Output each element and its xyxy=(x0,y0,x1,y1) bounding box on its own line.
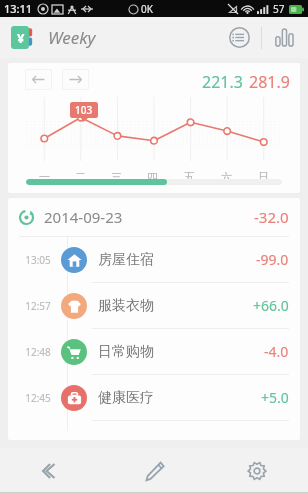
staticText: 221.3 xyxy=(202,71,243,93)
button[interactable]: Settings xyxy=(205,448,308,493)
staticText: 12:48 xyxy=(22,345,54,359)
staticText: 13:05 xyxy=(22,253,54,267)
button[interactable]: List xyxy=(217,17,261,58)
button[interactable]: 12:45 xyxy=(8,375,300,420)
staticText: 2014-09-23 xyxy=(44,207,123,227)
staticText: 服装衣物 xyxy=(98,297,154,315)
staticText: Weeky xyxy=(48,26,96,49)
staticText: 12:45 xyxy=(22,391,54,405)
button[interactable]: Edit xyxy=(102,448,205,493)
button[interactable]: Statistics xyxy=(262,17,308,58)
staticText: -4.0 xyxy=(264,342,289,361)
staticText: 13:11 xyxy=(4,1,33,16)
staticText: 281.9 xyxy=(249,71,290,93)
staticText: 房屋住宿 xyxy=(98,251,154,269)
staticText: +5.0 xyxy=(261,388,289,407)
staticText: 103 xyxy=(75,103,93,117)
staticText: ¥ xyxy=(17,29,25,47)
button[interactable]: Next week xyxy=(62,69,89,90)
staticText: 三 xyxy=(111,170,122,184)
button[interactable]: 2014-09-23 xyxy=(8,198,300,236)
button[interactable]: 13:05 xyxy=(8,237,300,282)
staticText: 二 xyxy=(75,170,86,184)
staticText: 四 xyxy=(147,170,158,184)
staticText: 一 xyxy=(39,170,50,184)
staticText: -99.0 xyxy=(256,250,289,269)
staticText: 12:57 xyxy=(22,299,54,313)
staticText: 六 xyxy=(221,170,232,184)
button[interactable]: 12:57 xyxy=(8,283,300,328)
staticText: -32.0 xyxy=(254,207,289,227)
staticText: +66.0 xyxy=(253,296,289,315)
staticText: 57 xyxy=(273,2,285,16)
button[interactable]: Previous week xyxy=(25,69,52,90)
staticText: 健康医疗 xyxy=(98,389,154,407)
staticText: 日 xyxy=(258,170,269,184)
staticText: 五 xyxy=(184,170,195,184)
staticText: 0K xyxy=(141,2,153,16)
button[interactable]: Back xyxy=(0,448,102,493)
staticText: 日常购物 xyxy=(98,343,154,361)
button[interactable]: 12:48 xyxy=(8,329,300,374)
